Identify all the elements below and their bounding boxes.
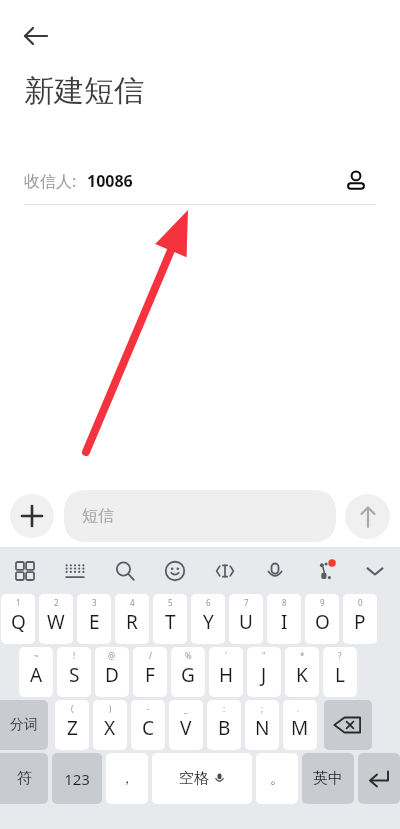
staticText: J <box>261 662 267 688</box>
button[interactable]: ， <box>106 753 148 804</box>
staticText: 9 <box>320 597 325 608</box>
staticText: 短信 <box>82 506 114 526</box>
button[interactable]: 4 <box>115 594 149 644</box>
button[interactable]: / <box>133 647 167 697</box>
button[interactable]: Apps <box>0 547 50 594</box>
button[interactable]: 1 <box>1 594 35 644</box>
button[interactable]: Backspace <box>324 700 372 750</box>
button[interactable]: * <box>285 647 319 697</box>
button[interactable]: 英中 <box>302 753 354 804</box>
button[interactable]: 7 <box>229 594 263 644</box>
staticText: C <box>142 715 155 741</box>
button[interactable]: 5 <box>153 594 187 644</box>
button[interactable]: _ <box>169 700 203 750</box>
staticText: P <box>354 609 366 635</box>
staticText: K <box>296 662 308 688</box>
button[interactable]: 123 <box>52 753 102 804</box>
staticText: 空格 <box>179 769 209 788</box>
button[interactable]: ( <box>55 700 89 750</box>
staticText: 7 <box>244 597 249 608</box>
staticText: - <box>147 703 150 714</box>
staticText: 8 <box>282 597 287 608</box>
button[interactable]: Keyboard layout <box>50 547 100 594</box>
staticText: ) <box>109 703 112 714</box>
button[interactable]: 符 <box>0 753 48 804</box>
staticText: M <box>291 715 309 741</box>
staticText: % <box>185 650 192 661</box>
button[interactable]: Enter <box>358 753 400 804</box>
staticText: ! <box>73 650 76 661</box>
staticText: X <box>104 715 116 741</box>
staticText: H <box>219 662 234 688</box>
staticText: A <box>30 662 43 688</box>
staticText: ( <box>71 703 74 714</box>
staticText: 3 <box>92 597 97 608</box>
button[interactable]: : <box>207 700 241 750</box>
button[interactable]: ) <box>93 700 127 750</box>
button[interactable]: ! <box>57 647 91 697</box>
staticText: 分词 <box>10 716 38 734</box>
staticText: @ <box>108 650 116 661</box>
button[interactable]: 空格 <box>152 753 252 804</box>
button[interactable]: Search <box>100 547 150 594</box>
staticText: Q <box>11 609 26 635</box>
button[interactable]: - <box>131 700 165 750</box>
staticText: 新建短信 <box>24 72 144 110</box>
staticText: " <box>262 650 266 661</box>
button[interactable]: 9 <box>305 594 339 644</box>
button[interactable]: Collapse keyboard <box>350 547 400 594</box>
button[interactable]: Text edit <box>200 547 250 594</box>
staticText: O <box>315 609 330 635</box>
staticText: 0 <box>358 597 363 608</box>
button[interactable]: Voice input <box>250 547 300 594</box>
staticText: 123 <box>64 769 90 789</box>
button[interactable]: Send <box>345 494 390 539</box>
button[interactable]: ~ <box>19 647 53 697</box>
staticText: 英中 <box>313 769 343 788</box>
button[interactable]: Choose contact <box>336 161 376 201</box>
button[interactable]: ' <box>209 647 243 697</box>
button[interactable]: 短信 <box>64 490 336 542</box>
staticText: 4 <box>130 597 135 608</box>
staticText: B <box>218 715 231 741</box>
staticText: 1 <box>16 597 21 608</box>
staticText: / <box>149 650 152 661</box>
button[interactable]: 。 <box>256 753 298 804</box>
button[interactable]: 3 <box>77 594 111 644</box>
staticText: 收信人: <box>24 170 77 192</box>
staticText: E <box>89 609 100 635</box>
button[interactable]: ; <box>245 700 279 750</box>
staticText: W <box>47 609 65 635</box>
button[interactable]: 8 <box>267 594 301 644</box>
staticText: ? <box>338 650 342 661</box>
staticText: 6 <box>206 597 211 608</box>
staticText: ~ <box>34 650 39 661</box>
staticText: Z <box>67 715 78 741</box>
button[interactable]: " <box>247 647 281 697</box>
staticText: U <box>239 609 253 635</box>
button[interactable]: 6 <box>191 594 225 644</box>
button[interactable]: @ <box>95 647 129 697</box>
staticText: 符 <box>17 769 32 788</box>
staticText: * <box>300 650 305 661</box>
staticText: _ <box>184 703 188 714</box>
button[interactable]: % <box>171 647 205 697</box>
staticText: V <box>180 715 192 741</box>
button[interactable]: Emoji <box>150 547 200 594</box>
staticText: : <box>223 703 226 714</box>
button[interactable]: 2 <box>39 594 73 644</box>
button[interactable]: Add attachment <box>10 494 54 538</box>
staticText: I <box>281 609 288 635</box>
button[interactable]: Theme <box>300 547 350 594</box>
staticText: R <box>126 609 138 635</box>
button[interactable]: 分词 <box>0 700 48 750</box>
staticText: T <box>165 609 176 635</box>
button[interactable]: 0 <box>343 594 377 644</box>
staticText: G <box>181 662 195 688</box>
button[interactable]: 收信人: <box>24 158 336 204</box>
staticText: 。 <box>270 770 284 788</box>
button[interactable]: Back <box>14 14 58 58</box>
button[interactable]: 、 <box>283 700 317 750</box>
staticText: 2 <box>54 597 59 608</box>
button[interactable]: ? <box>323 647 357 697</box>
